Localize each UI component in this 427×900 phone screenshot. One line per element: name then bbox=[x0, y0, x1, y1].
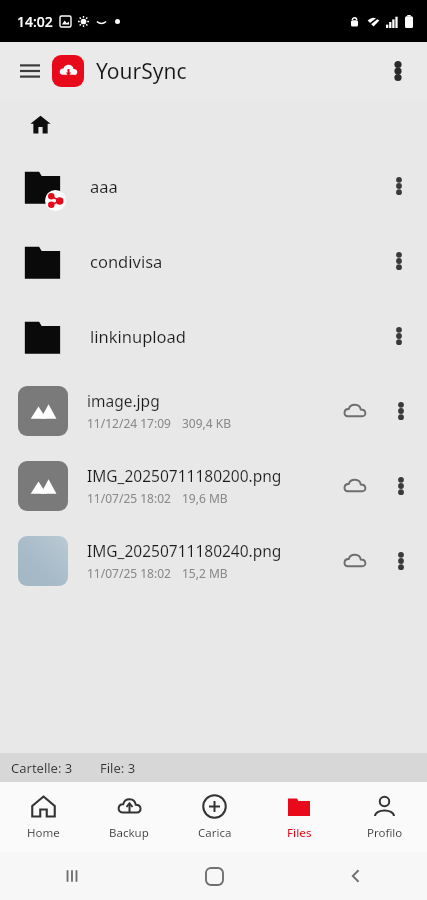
button[interactable]: Recents bbox=[0, 852, 143, 900]
button[interactable]: Options for image.jpg bbox=[381, 391, 421, 431]
button[interactable]: Cloud status bbox=[335, 391, 375, 431]
button[interactable]: aaa bbox=[0, 148, 427, 223]
staticText: Cartelle: 3 bbox=[11, 759, 73, 777]
button[interactable]: linkinupload bbox=[0, 298, 427, 373]
staticText: aaa bbox=[90, 175, 377, 197]
staticText: Carica bbox=[198, 825, 232, 841]
staticText: 14:02 bbox=[17, 12, 53, 31]
button[interactable]: condivisa bbox=[0, 223, 427, 298]
button[interactable]: Cloud status bbox=[335, 466, 375, 506]
button[interactable]: Options for condivisa bbox=[377, 239, 421, 283]
staticText: image.jpg bbox=[87, 390, 160, 411]
staticText: Profilo bbox=[367, 825, 403, 841]
button[interactable]: Options for IMG_20250711180200.png bbox=[381, 466, 421, 506]
staticText: 15,2 MB bbox=[182, 565, 228, 581]
staticText: YourSync bbox=[96, 57, 187, 86]
staticText: Backup bbox=[109, 825, 149, 841]
button[interactable]: Carica bbox=[172, 788, 257, 847]
button[interactable]: Profilo bbox=[342, 788, 427, 847]
staticText: linkinupload bbox=[90, 325, 377, 347]
staticText: 309,4 KB bbox=[182, 415, 232, 431]
button[interactable]: IMG_20250711180200.png bbox=[0, 448, 427, 523]
button[interactable]: Home bbox=[0, 788, 86, 847]
staticText: condivisa bbox=[90, 250, 377, 272]
staticText: File: 3 bbox=[100, 759, 136, 777]
staticText: 11/07/25 18:02 bbox=[87, 565, 171, 581]
button[interactable]: Backup bbox=[86, 788, 172, 847]
button[interactable]: Options for IMG_20250711180240.png bbox=[381, 541, 421, 581]
button[interactable]: More options bbox=[377, 50, 419, 92]
staticText: Home bbox=[27, 825, 60, 841]
button[interactable]: Home folder bbox=[22, 106, 58, 142]
staticText: 11/07/25 18:02 bbox=[87, 490, 171, 506]
button[interactable]: Options for linkinupload bbox=[377, 314, 421, 358]
button[interactable]: image.jpg bbox=[0, 373, 427, 448]
button[interactable]: Home bbox=[143, 852, 285, 900]
button[interactable]: Back bbox=[285, 852, 427, 900]
staticText: Files bbox=[287, 825, 312, 841]
button[interactable]: Cloud status bbox=[335, 541, 375, 581]
button[interactable]: Options for aaa bbox=[377, 164, 421, 208]
button[interactable]: IMG_20250711180240.png bbox=[0, 523, 427, 598]
staticText: IMG_20250711180200.png bbox=[87, 465, 282, 486]
button[interactable]: Menu bbox=[10, 51, 50, 91]
staticText: IMG_20250711180240.png bbox=[87, 540, 282, 561]
staticText: 11/12/24 17:09 bbox=[87, 415, 171, 431]
button[interactable]: Files bbox=[257, 788, 342, 847]
staticText: 19,6 MB bbox=[182, 490, 228, 506]
